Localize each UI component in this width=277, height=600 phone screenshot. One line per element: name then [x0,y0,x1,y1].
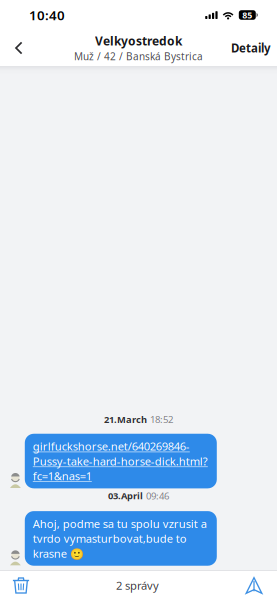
button[interactable]: Back [0,31,38,65]
staticText: 03.April [108,489,143,502]
staticText: 85 [242,9,252,21]
button[interactable]: Detaily [225,31,277,65]
staticText: 18:52 [150,413,173,426]
staticText: Ahoj, podme sa tu spolu vzrusit a tvrdo … [33,516,207,561]
staticText: 10:40 [29,6,65,24]
button[interactable]: Send message [233,571,275,600]
staticText: girlfuckshorse.net/640269846-Pussy-take-… [33,439,208,483]
staticText: 2 správy [116,578,159,593]
staticText: 21.March [104,413,147,426]
staticText: 09:46 [146,489,169,502]
staticText: Muž / 42 / Banská Bystrica [74,50,203,63]
staticText: Detaily [231,40,271,56]
staticText: Velkyostredok [95,33,182,49]
button[interactable]: Delete conversation [0,571,42,600]
